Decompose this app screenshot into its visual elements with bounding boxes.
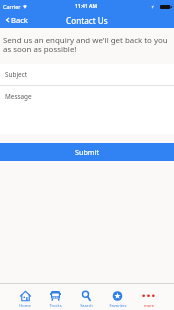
staticText: Submit [75, 147, 99, 157]
staticText: Search [80, 303, 93, 308]
button[interactable]: Message [0, 86, 174, 134]
staticText: Send us an enquiry and we'll get back to… [3, 35, 168, 54]
staticText: more [144, 303, 154, 308]
staticText: Contact Us [66, 15, 108, 26]
button[interactable]: Trucks [40, 288, 71, 310]
button[interactable]: Search [71, 288, 102, 310]
staticText: Home [19, 303, 31, 308]
button[interactable]: More [133, 288, 164, 310]
staticText: Favorites [109, 303, 127, 308]
staticText: 11:41 AM [75, 3, 98, 10]
staticText: Back [11, 15, 28, 24]
button[interactable]: Favorites [102, 288, 133, 310]
button[interactable]: Submit [0, 143, 174, 161]
staticText: Message [5, 92, 32, 101]
button[interactable]: Subject [0, 64, 174, 85]
staticText: Carrier [3, 3, 21, 10]
button[interactable]: Back [0, 12, 33, 27]
staticText: Subject [5, 70, 28, 79]
staticText: Trucks [49, 303, 62, 308]
button[interactable]: Home [10, 288, 40, 310]
